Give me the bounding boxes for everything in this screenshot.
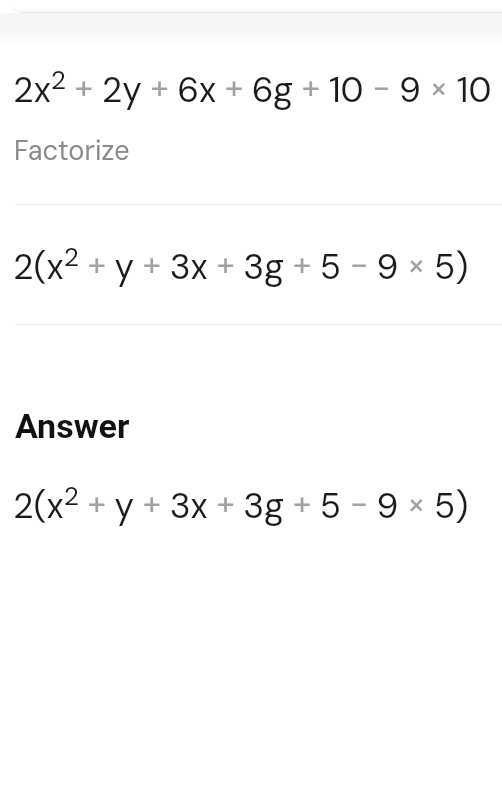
staticText: Answer <box>15 406 130 446</box>
staticText: 2(x2 + y + 3x + 3g + 5 − 9 × 5) <box>13 479 469 529</box>
staticText: 2x2 + 2y + 6x + 6g + 10 − 9 × 10 <box>13 63 492 113</box>
staticText: 2(x2 + y + 3x + 3g + 5 − 9 × 5) <box>13 240 469 290</box>
staticText: Factorize <box>14 133 130 168</box>
button[interactable]: 2x2 + 2y + 6x + 6g + 10 − 9 × 10 <box>0 50 502 205</box>
button[interactable]: 2(x2 + y + 3x + 3g + 5 − 9 × 5) <box>0 206 502 325</box>
